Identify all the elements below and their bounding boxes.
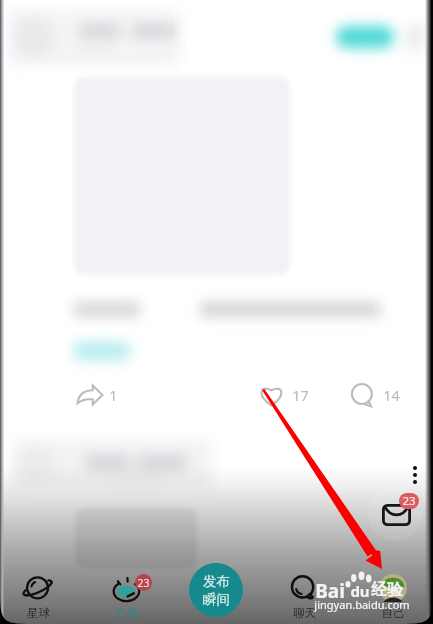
button[interactable]: 自己 — [363, 574, 423, 620]
button[interactable]: 23 — [96, 574, 156, 620]
button[interactable]: 1 — [76, 382, 118, 408]
staticText: 发布 — [203, 573, 230, 590]
button[interactable]: 聊天 — [274, 574, 334, 620]
staticText: 广场 — [115, 606, 138, 620]
staticText: 23 — [137, 576, 150, 590]
staticText: 23 — [402, 493, 416, 509]
button[interactable]: Messages — [368, 486, 423, 541]
staticText: 瞬间 — [203, 591, 230, 608]
staticText: 14 — [383, 385, 400, 405]
button[interactable]: More options — [407, 466, 423, 486]
button[interactable]: 发布 — [189, 563, 243, 617]
staticText: Bai — [315, 578, 345, 604]
button[interactable]: 14 — [350, 382, 400, 408]
staticText: 自己 — [382, 606, 405, 620]
staticText: jingyan.baidu.com — [314, 597, 410, 612]
button[interactable]: 星球 — [8, 574, 68, 620]
staticText: du — [350, 581, 370, 601]
button[interactable]: 17 — [259, 382, 309, 408]
staticText: 星球 — [27, 606, 50, 620]
staticText: 经验 — [371, 580, 403, 600]
button[interactable] — [336, 26, 394, 48]
staticText: 聊天 — [293, 606, 316, 620]
staticText: 17 — [292, 385, 309, 405]
staticText: 1 — [109, 385, 118, 405]
